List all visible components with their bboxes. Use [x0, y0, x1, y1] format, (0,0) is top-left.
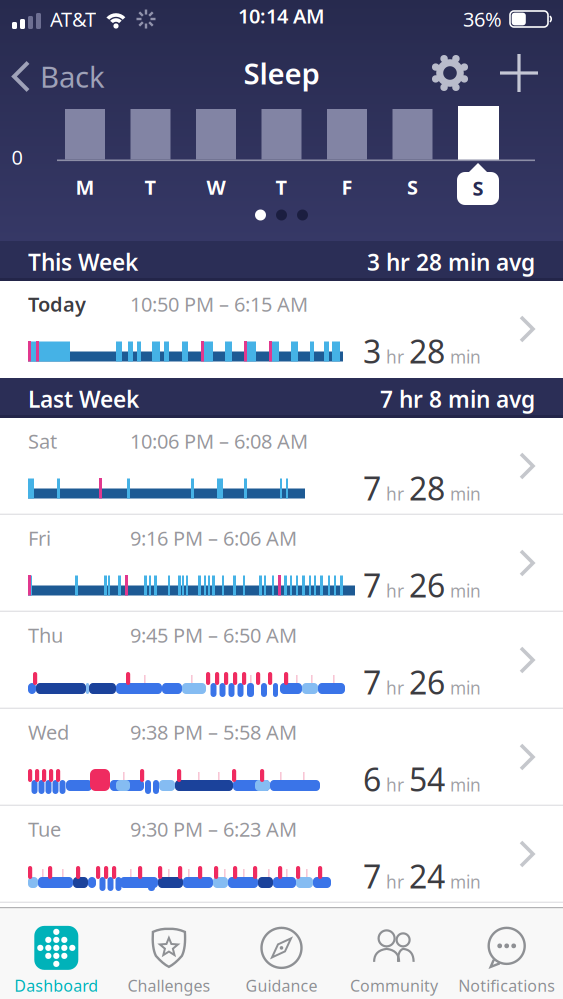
staticText: 6: [363, 758, 381, 800]
staticText: min: [450, 345, 481, 368]
staticText: S: [472, 175, 483, 201]
button[interactable]: Add: [499, 53, 539, 93]
staticText: min: [450, 870, 481, 893]
staticText: hr: [386, 482, 404, 505]
button[interactable]: Notifications: [458, 924, 555, 996]
staticText: min: [450, 773, 481, 796]
staticText: min: [450, 579, 481, 602]
staticText: 26: [409, 661, 445, 703]
staticText: Notifications: [458, 975, 555, 996]
button[interactable]: Dashboard: [14, 924, 98, 996]
staticText: M: [75, 174, 94, 200]
staticText: T: [275, 174, 287, 200]
staticText: Sleep: [243, 53, 319, 92]
button[interactable]: Settings: [428, 51, 472, 95]
button[interactable]: Community: [350, 924, 438, 996]
staticText: 54: [409, 758, 445, 800]
staticText: 9:16 PM – 6:06 AM: [130, 525, 297, 551]
staticText: F: [341, 174, 352, 200]
button[interactable]: Sunday: [457, 163, 499, 205]
staticText: 7: [363, 467, 381, 509]
staticText: hr: [386, 579, 404, 602]
button[interactable]: Thu: [0, 612, 563, 709]
staticText: hr: [386, 870, 404, 893]
staticText: 24: [409, 855, 445, 897]
staticText: Dashboard: [14, 975, 98, 996]
staticText: 7: [363, 661, 381, 703]
staticText: 28: [409, 330, 445, 372]
staticText: Back: [40, 57, 105, 96]
staticText: 9:45 PM – 6:50 AM: [130, 622, 297, 648]
button[interactable]: Tue: [0, 806, 563, 903]
staticText: 28: [409, 467, 445, 509]
staticText: 0: [11, 144, 22, 170]
button[interactable]: Back: [12, 57, 105, 96]
staticText: Wed: [28, 719, 69, 745]
staticText: Today: [28, 291, 86, 317]
button[interactable]: Challenges: [127, 924, 210, 996]
staticText: 26: [409, 564, 445, 606]
staticText: 3 hr 28 min avg: [367, 247, 535, 277]
staticText: 10:50 PM – 6:15 AM: [130, 291, 308, 317]
staticText: T: [144, 174, 156, 200]
staticText: Community: [350, 975, 438, 996]
staticText: W: [206, 174, 225, 200]
button[interactable]: Guidance: [245, 924, 317, 996]
staticText: Fri: [28, 525, 51, 551]
staticText: This Week: [28, 247, 138, 277]
button[interactable]: Sat: [0, 418, 563, 515]
staticText: Last Week: [28, 384, 139, 414]
staticText: 9:30 PM – 6:23 AM: [130, 816, 297, 842]
staticText: 7 hr 8 min avg: [380, 384, 535, 414]
staticText: 3: [363, 330, 381, 372]
staticText: 9:38 PM – 5:58 AM: [130, 719, 297, 745]
staticText: Thu: [28, 622, 63, 648]
button[interactable]: Today: [0, 281, 563, 378]
staticText: hr: [386, 345, 404, 368]
staticText: AT&T: [50, 6, 96, 32]
staticText: Sat: [28, 428, 57, 454]
staticText: 10:06 PM – 6:08 AM: [130, 428, 308, 454]
staticText: min: [450, 676, 481, 699]
staticText: Challenges: [127, 975, 210, 996]
staticText: hr: [386, 773, 404, 796]
staticText: S: [407, 174, 418, 200]
staticText: 7: [363, 855, 381, 897]
staticText: 10:14 AM: [238, 2, 325, 29]
button[interactable]: Wed: [0, 709, 563, 806]
staticText: min: [450, 482, 481, 505]
staticText: 36%: [463, 6, 502, 32]
staticText: Guidance: [245, 975, 317, 996]
staticText: 7: [363, 564, 381, 606]
staticText: Tue: [28, 816, 61, 842]
staticText: hr: [386, 676, 404, 699]
button[interactable]: Fri: [0, 515, 563, 612]
